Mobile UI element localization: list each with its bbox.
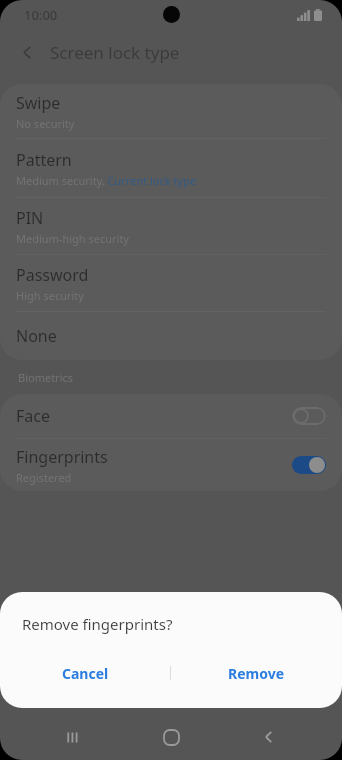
button[interactable]: Home xyxy=(147,714,195,760)
button[interactable]: Cancel xyxy=(0,652,170,694)
button[interactable]: Swipe xyxy=(0,84,342,138)
staticText: Screen lock type xyxy=(50,41,180,64)
staticText: 10:00 xyxy=(24,6,58,24)
button[interactable]: None xyxy=(0,312,342,360)
staticText: No security xyxy=(16,116,75,131)
staticText: PIN xyxy=(16,207,44,229)
staticText: Swipe xyxy=(16,92,61,114)
staticText: Registered xyxy=(16,470,72,485)
button[interactable]: Pattern xyxy=(0,139,342,197)
button[interactable]: Remove xyxy=(171,652,342,694)
staticText: Face xyxy=(16,405,50,427)
staticText: Pattern xyxy=(16,149,72,171)
staticText: Medium security, Current lock type xyxy=(16,173,197,188)
staticText: Remove fingerprints? xyxy=(22,614,173,634)
button[interactable]: Face xyxy=(292,407,326,425)
button[interactable]: Recents xyxy=(50,714,98,760)
button[interactable]: PIN xyxy=(0,198,342,254)
button[interactable]: Fingerprints xyxy=(0,439,342,491)
staticText: Fingerprints xyxy=(16,446,108,468)
staticText: Cancel xyxy=(62,664,109,683)
staticText: None xyxy=(16,325,57,347)
staticText: Biometrics xyxy=(18,370,74,385)
staticText: Remove xyxy=(228,664,285,683)
button[interactable]: Back xyxy=(10,35,44,69)
button[interactable]: Back xyxy=(245,714,293,760)
staticText: High security xyxy=(16,288,84,303)
staticText: Medium-high security xyxy=(16,231,129,246)
button[interactable]: Fingerprints xyxy=(292,456,326,474)
button[interactable]: Password xyxy=(0,255,342,311)
button[interactable]: Face xyxy=(0,394,342,438)
staticText: Password xyxy=(16,264,89,286)
